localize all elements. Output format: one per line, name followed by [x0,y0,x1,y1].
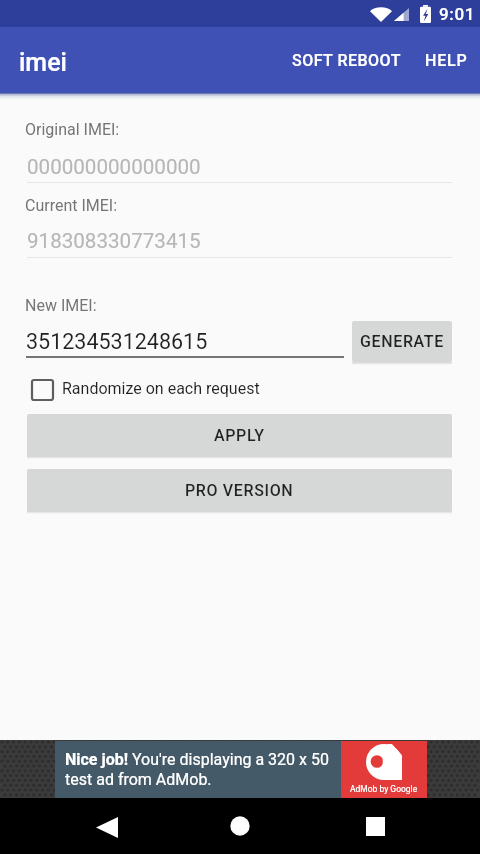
staticText: Original IMEI: [25,120,120,139]
staticText: 9:01 [439,4,476,24]
staticText: Current IMEI: [25,196,118,215]
button[interactable]: SOFT REBOOT [280,35,413,86]
button[interactable]: Nice job! You're displaying a 320 x 50 [55,741,341,798]
button[interactable]: GENERATE [352,321,452,362]
button[interactable]: Randomize on each request [27,375,260,401]
button[interactable]: HELP [413,35,480,86]
button[interactable]: APPLY [27,414,452,457]
staticText: test ad from AdMob. [65,770,212,789]
staticText: 351234531248615 [26,329,208,354]
staticText: PRO VERSION [185,481,294,500]
staticText: Nice job! You're displaying a 320 x 50 [65,750,329,769]
staticText: GENERATE [360,332,444,351]
staticText: imei [19,48,67,77]
button[interactable]: Home [216,802,264,850]
staticText: New IMEI: [25,296,97,315]
staticText: APPLY [214,426,265,445]
button[interactable]: AdMob by Google [341,741,427,798]
staticText: SOFT REBOOT [292,51,401,70]
staticText: 000000000000000 [27,155,201,179]
staticText: Randomize on each request [62,379,260,398]
button[interactable]: PRO VERSION [27,469,452,512]
button[interactable]: Back [83,802,131,850]
staticText: AdMob by Google [350,784,418,794]
staticText: HELP [425,51,468,70]
button[interactable]: Recent apps [351,802,399,850]
staticText: 918308330773415 [27,229,201,253]
